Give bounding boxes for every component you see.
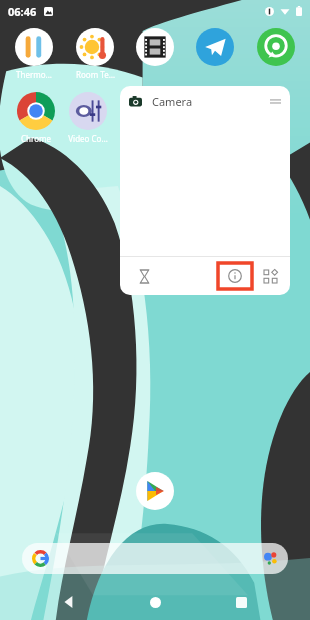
button[interactable]: Room Temperature [69, 26, 121, 82]
other: Video Converter [69, 92, 107, 130]
button[interactable]: Telegram [189, 26, 241, 68]
staticText: Room Te… [76, 69, 115, 80]
staticText: 06:46 [8, 4, 37, 19]
button[interactable]: Play Store [136, 472, 174, 510]
other: WhatsApp [257, 28, 295, 66]
button[interactable]: Thermometer [8, 26, 60, 82]
button[interactable]: Video Converter [62, 90, 114, 146]
button[interactable]: Home [138, 585, 172, 619]
button[interactable]: Video player [129, 26, 181, 68]
other: Room Temperature [76, 28, 114, 66]
button[interactable]: Chrome [10, 90, 62, 146]
staticText: Thermo... [16, 69, 52, 80]
staticText: Chrome [21, 133, 51, 144]
other: Camera [129, 95, 142, 108]
staticText: Camera [152, 94, 193, 109]
other: Telegram [196, 28, 234, 66]
button[interactable]: App info [218, 263, 252, 289]
button[interactable]: Back [52, 585, 86, 619]
button[interactable]: Recent apps [224, 585, 258, 619]
button[interactable]: Widgets [258, 264, 282, 288]
button[interactable]: Usage time [132, 264, 156, 288]
button[interactable] [22, 543, 288, 574]
button[interactable]: WhatsApp [250, 26, 302, 68]
other: Thermometer [15, 28, 53, 66]
button[interactable]: Camera [120, 86, 290, 116]
staticText: Video Co… [68, 133, 108, 144]
other: Video player [136, 28, 174, 66]
other: Chrome [17, 92, 55, 130]
